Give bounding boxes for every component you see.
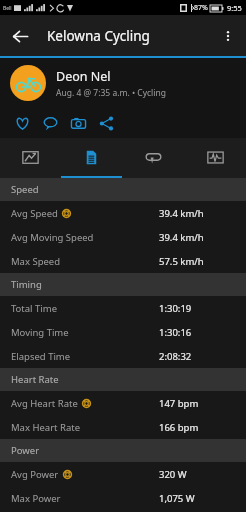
staticText: Max Power	[11, 492, 61, 505]
staticText: 1:30:16	[159, 326, 192, 339]
button[interactable]: Comment	[36, 108, 64, 138]
button[interactable]: Details	[61, 138, 122, 176]
staticText: 87%	[194, 3, 208, 13]
staticText: Kelowna Cycling	[47, 27, 150, 45]
staticText: Heart Rate	[11, 373, 59, 386]
staticText: Timing	[11, 278, 42, 291]
button[interactable]: Back	[0, 16, 40, 56]
staticText: Avg Speed	[11, 207, 58, 220]
button[interactable]: Graphs	[184, 138, 246, 176]
button[interactable]: Avg Moving Speed	[0, 225, 246, 249]
staticText: 320 W	[159, 468, 187, 481]
button[interactable]: Moving Time	[0, 320, 246, 344]
staticText: 39.4 km/h	[159, 207, 204, 220]
staticText: 39.4 km/h	[159, 231, 204, 244]
staticText: Max Heart Rate	[11, 421, 81, 434]
button[interactable]: Add photo	[64, 108, 92, 138]
staticText: Deon Nel	[56, 68, 111, 85]
button[interactable]: Laps	[122, 138, 184, 176]
button[interactable]: Max Power	[0, 486, 246, 510]
button[interactable]: Avg Power	[0, 462, 246, 486]
staticText: Power	[11, 444, 40, 457]
staticText: 9:55	[227, 3, 242, 13]
button[interactable]: More options	[210, 18, 246, 54]
button[interactable]: Max Heart Rate	[0, 415, 246, 439]
button[interactable]: Avg Speed	[0, 201, 246, 225]
staticText: Total Time	[11, 302, 58, 315]
button[interactable]: Map	[0, 138, 61, 176]
button[interactable]: Elapsed Time	[0, 344, 246, 368]
staticText: Bell	[3, 5, 12, 12]
staticText: Speed	[11, 183, 39, 196]
button[interactable]: Like	[8, 108, 36, 138]
staticText: Max Speed	[11, 255, 61, 268]
staticText: Elapsed Time	[11, 350, 71, 363]
staticText: 2:08:32	[159, 350, 192, 363]
button[interactable]: Deon Nel	[0, 58, 246, 108]
staticText: Moving Time	[11, 326, 69, 339]
button[interactable]: Max Speed	[0, 249, 246, 273]
staticText: Avg Heart Rate	[11, 397, 78, 410]
staticText: 147 bpm	[159, 397, 199, 410]
staticText: Avg Moving Speed	[11, 231, 94, 244]
staticText: Aug. 4 @ 7:35 a.m. • Cycling	[56, 87, 166, 99]
staticText: 1:30:19	[159, 302, 192, 315]
staticText: 57.5 km/h	[159, 255, 204, 268]
button[interactable]: Share	[92, 108, 120, 138]
staticText: Avg Power	[11, 468, 59, 481]
button[interactable]: Avg Heart Rate	[0, 391, 246, 415]
button[interactable]: Total Time	[0, 296, 246, 320]
staticText: 1,075 W	[159, 492, 195, 505]
staticText: 166 bpm	[159, 421, 199, 434]
